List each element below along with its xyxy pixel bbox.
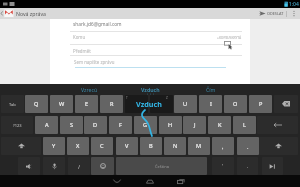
button[interactable]: P: [249, 95, 272, 113]
button[interactable]: [1, 137, 41, 155]
staticText: .: [247, 163, 249, 170]
button[interactable]: N: [164, 137, 186, 155]
button[interactable]: Back: [105, 175, 129, 187]
button[interactable]: More options: [287, 8, 300, 19]
button[interactable]: .: [237, 157, 258, 175]
staticText: D: [93, 121, 98, 129]
button[interactable]: I: [199, 95, 222, 113]
button[interactable]: Vzrecú: [61, 84, 117, 95]
staticText: C: [100, 142, 104, 150]
staticText: U: [183, 100, 188, 108]
button[interactable]: B: [140, 137, 162, 155]
staticText: G: [143, 121, 148, 129]
staticText: Vzduch: [136, 99, 162, 109]
button[interactable]: Recent apps: [169, 175, 193, 187]
staticText: /: [78, 163, 81, 170]
staticText: W: [59, 100, 65, 108]
button[interactable]: [18, 157, 40, 175]
button[interactable]: G: [134, 116, 157, 134]
button[interactable]: C: [91, 137, 113, 155]
button[interactable]: Čeština: [116, 157, 207, 175]
button[interactable]: O: [224, 95, 247, 113]
staticText: N: [173, 142, 178, 150]
staticText: L: [243, 121, 246, 129]
staticText: Nová zpráva: [16, 10, 46, 17]
button[interactable]: R: [100, 95, 123, 113]
staticText: Sem napište zprávu: [74, 59, 115, 65]
staticText: S: [70, 121, 74, 129]
button[interactable]: V: [116, 137, 138, 155]
button[interactable]: D: [84, 116, 107, 134]
staticText: B: [149, 142, 153, 150]
staticText: ,: [222, 143, 224, 150]
button[interactable]: J: [183, 116, 206, 134]
button[interactable]: Q: [25, 95, 48, 113]
button[interactable]: A: [35, 116, 58, 134]
button[interactable]: ,: [212, 137, 234, 155]
button[interactable]: [125, 95, 148, 113]
staticText: Y: [52, 142, 56, 150]
staticText: R: [110, 100, 114, 108]
staticText: E: [85, 100, 89, 108]
button[interactable]: [259, 137, 298, 155]
button[interactable]: K: [208, 116, 231, 134]
button[interactable]: ': [212, 157, 234, 175]
button[interactable]: E: [75, 95, 98, 113]
button[interactable]: Komu: [70, 34, 242, 40]
staticText: Tab: [9, 102, 16, 107]
staticText: ODESLAT: [267, 11, 284, 16]
staticText: Q: [34, 100, 39, 108]
staticText: V: [125, 142, 129, 150]
button[interactable]: L: [233, 116, 256, 134]
button[interactable]: H: [159, 116, 182, 134]
staticText: ': [222, 163, 224, 170]
button[interactable]: Tab: [1, 95, 24, 113]
staticText: T: [126, 96, 128, 100]
button[interactable]: Y: [43, 137, 65, 155]
staticText: 11:04: [286, 1, 299, 8]
button[interactable]: .: [237, 137, 259, 155]
staticText: shark.jd6@gmail.com: [73, 21, 122, 28]
button[interactable]: [150, 95, 173, 113]
staticText: Vzrecú: [81, 86, 98, 93]
button[interactable]: [262, 157, 283, 175]
staticText: Čím: [206, 86, 216, 93]
staticText: Vzduch: [141, 86, 160, 93]
button[interactable]: [274, 95, 298, 113]
staticText: P: [259, 100, 263, 108]
staticText: M: [196, 142, 202, 150]
staticText: F: [119, 121, 122, 129]
staticText: I: [210, 100, 212, 108]
button[interactable]: Čím: [183, 84, 239, 95]
button[interactable]: ODESLAT: [256, 8, 286, 19]
button[interactable]: ?123: [1, 116, 33, 134]
button[interactable]: M: [188, 137, 210, 155]
button[interactable]: Home: [138, 175, 162, 187]
button[interactable]: U: [174, 95, 197, 113]
button[interactable]: W: [50, 95, 73, 113]
staticText: O: [233, 100, 238, 108]
staticText: Čeština: [155, 164, 169, 169]
button[interactable]: Back: [0, 8, 16, 19]
staticText: Předmět: [73, 48, 91, 54]
staticText: K: [218, 121, 222, 129]
staticText: +KOPIE/SKRYTÁ: [217, 35, 242, 39]
staticText: Komu: [73, 34, 86, 40]
staticText: H: [168, 121, 173, 129]
staticText: X: [76, 142, 80, 150]
button[interactable]: X: [67, 137, 89, 155]
button[interactable]: [43, 157, 65, 175]
button[interactable]: S: [60, 116, 83, 134]
button[interactable]: /: [68, 157, 90, 175]
staticText: .: [247, 143, 249, 150]
button[interactable]: [257, 116, 298, 134]
button[interactable]: F: [109, 116, 132, 134]
button[interactable]: Vzduch: [122, 84, 178, 95]
staticText: Z: [166, 96, 168, 100]
staticText: A: [45, 121, 49, 129]
staticText: ?123: [13, 123, 22, 128]
button[interactable]: [91, 157, 114, 175]
staticText: J: [194, 121, 196, 129]
